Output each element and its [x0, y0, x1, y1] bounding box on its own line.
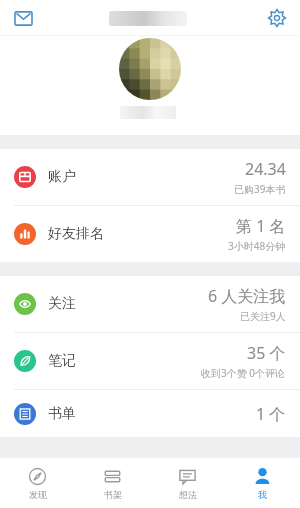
staticText: 好友排名: [48, 225, 104, 243]
staticText: 1 个: [256, 403, 286, 425]
staticText: 书单: [48, 405, 76, 423]
button[interactable]: 书单: [0, 390, 300, 437]
button[interactable]: 好友排名: [0, 206, 300, 262]
button[interactable]: 笔记: [0, 333, 300, 389]
staticText: 我: [258, 489, 267, 500]
button[interactable]: Messages: [8, 3, 38, 33]
staticText: 已关注9人: [240, 309, 286, 323]
staticText: 35 个: [247, 342, 286, 364]
staticText: 书架: [104, 489, 122, 500]
button[interactable]: Profile avatar: [119, 38, 181, 100]
staticText: 关注: [48, 295, 76, 313]
button[interactable]: 想法: [150, 458, 225, 508]
button[interactable]: Settings: [262, 3, 292, 33]
staticText: 24.34: [245, 158, 286, 180]
staticText: 3小时48分钟: [228, 239, 286, 253]
staticText: 第 1 名: [236, 215, 286, 237]
button[interactable]: 关注: [0, 276, 300, 332]
staticText: 想法: [179, 489, 197, 500]
staticText: 收到3个赞 0个评论: [201, 366, 286, 380]
staticText: 笔记: [48, 352, 76, 370]
staticText: 发现: [29, 489, 47, 500]
staticText: 已购39本书: [234, 182, 286, 196]
button[interactable]: 发现: [0, 458, 75, 508]
staticText: 6 人关注我: [208, 285, 286, 307]
button[interactable]: 书架: [75, 458, 150, 508]
button[interactable]: 我: [225, 458, 300, 508]
staticText: 账户: [48, 168, 76, 186]
button[interactable]: 账户: [0, 149, 300, 205]
